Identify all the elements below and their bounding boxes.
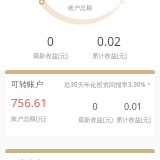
staticText: 累计收益(元): [116, 115, 151, 123]
staticText: 0: [47, 33, 54, 49]
staticText: 最新收益(元): [78, 115, 113, 123]
button[interactable]: 可转账户: [5, 70, 155, 136]
staticText: 756.61: [11, 95, 47, 111]
staticText: 最新收益(元): [33, 51, 68, 59]
staticText: 0.01: [124, 100, 142, 112]
button[interactable]: 固定账户: [5, 149, 155, 160]
staticText: 0: [92, 100, 98, 112]
staticText: 近30天年化投资回报率3.90%: [64, 80, 146, 89]
staticText: 固定账户: [11, 158, 43, 160]
staticText: 账户总额(元): [11, 114, 46, 122]
staticText: 可转账户: [11, 79, 43, 89]
staticText: 0.02: [97, 33, 121, 49]
staticText: 累计收益(元): [92, 51, 127, 59]
staticText: 账户总额: [68, 4, 92, 12]
